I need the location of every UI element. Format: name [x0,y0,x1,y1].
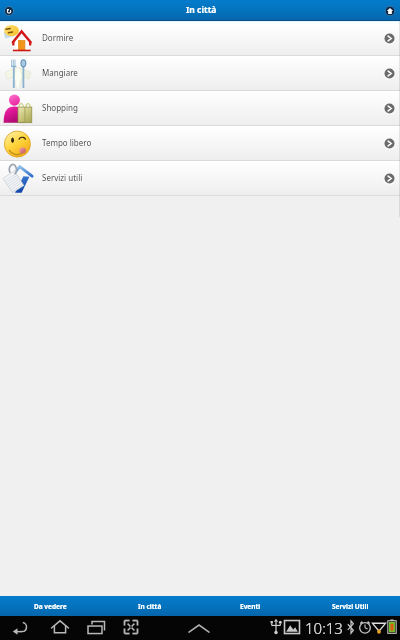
button[interactable]: Home [46,616,74,640]
button[interactable]: Recent apps [82,616,110,640]
staticText: In città [138,602,162,611]
staticText: Servizi Utili [332,602,369,611]
button[interactable]: Servizi utili [0,161,400,195]
staticText: In città [186,4,217,16]
button[interactable]: Servizi Utili [300,596,400,616]
button[interactable]: Back [3,5,15,17]
staticText: Mangiare [42,67,78,78]
button[interactable]: Dormire [0,21,400,55]
button[interactable]: In città [100,596,200,616]
button[interactable]: Shopping [0,91,400,125]
staticText: Da vedere [34,602,67,611]
staticText: Servizi utili [42,172,83,183]
button[interactable]: Show notifications [185,616,213,640]
staticText: Shopping [42,102,78,113]
button[interactable]: Screenshot [117,616,145,640]
staticText: Dormire [42,32,74,43]
button[interactable]: Home [384,5,396,17]
button[interactable]: Mangiare [0,56,400,90]
button[interactable]: Eventi [200,596,300,616]
button[interactable]: Tempo libero [0,126,400,160]
staticText: Eventi [240,602,261,611]
staticText: Tempo libero [42,137,92,148]
button[interactable]: Da vedere [0,596,100,616]
button[interactable]: Back [6,616,34,640]
staticText: 10:13 [305,618,343,638]
